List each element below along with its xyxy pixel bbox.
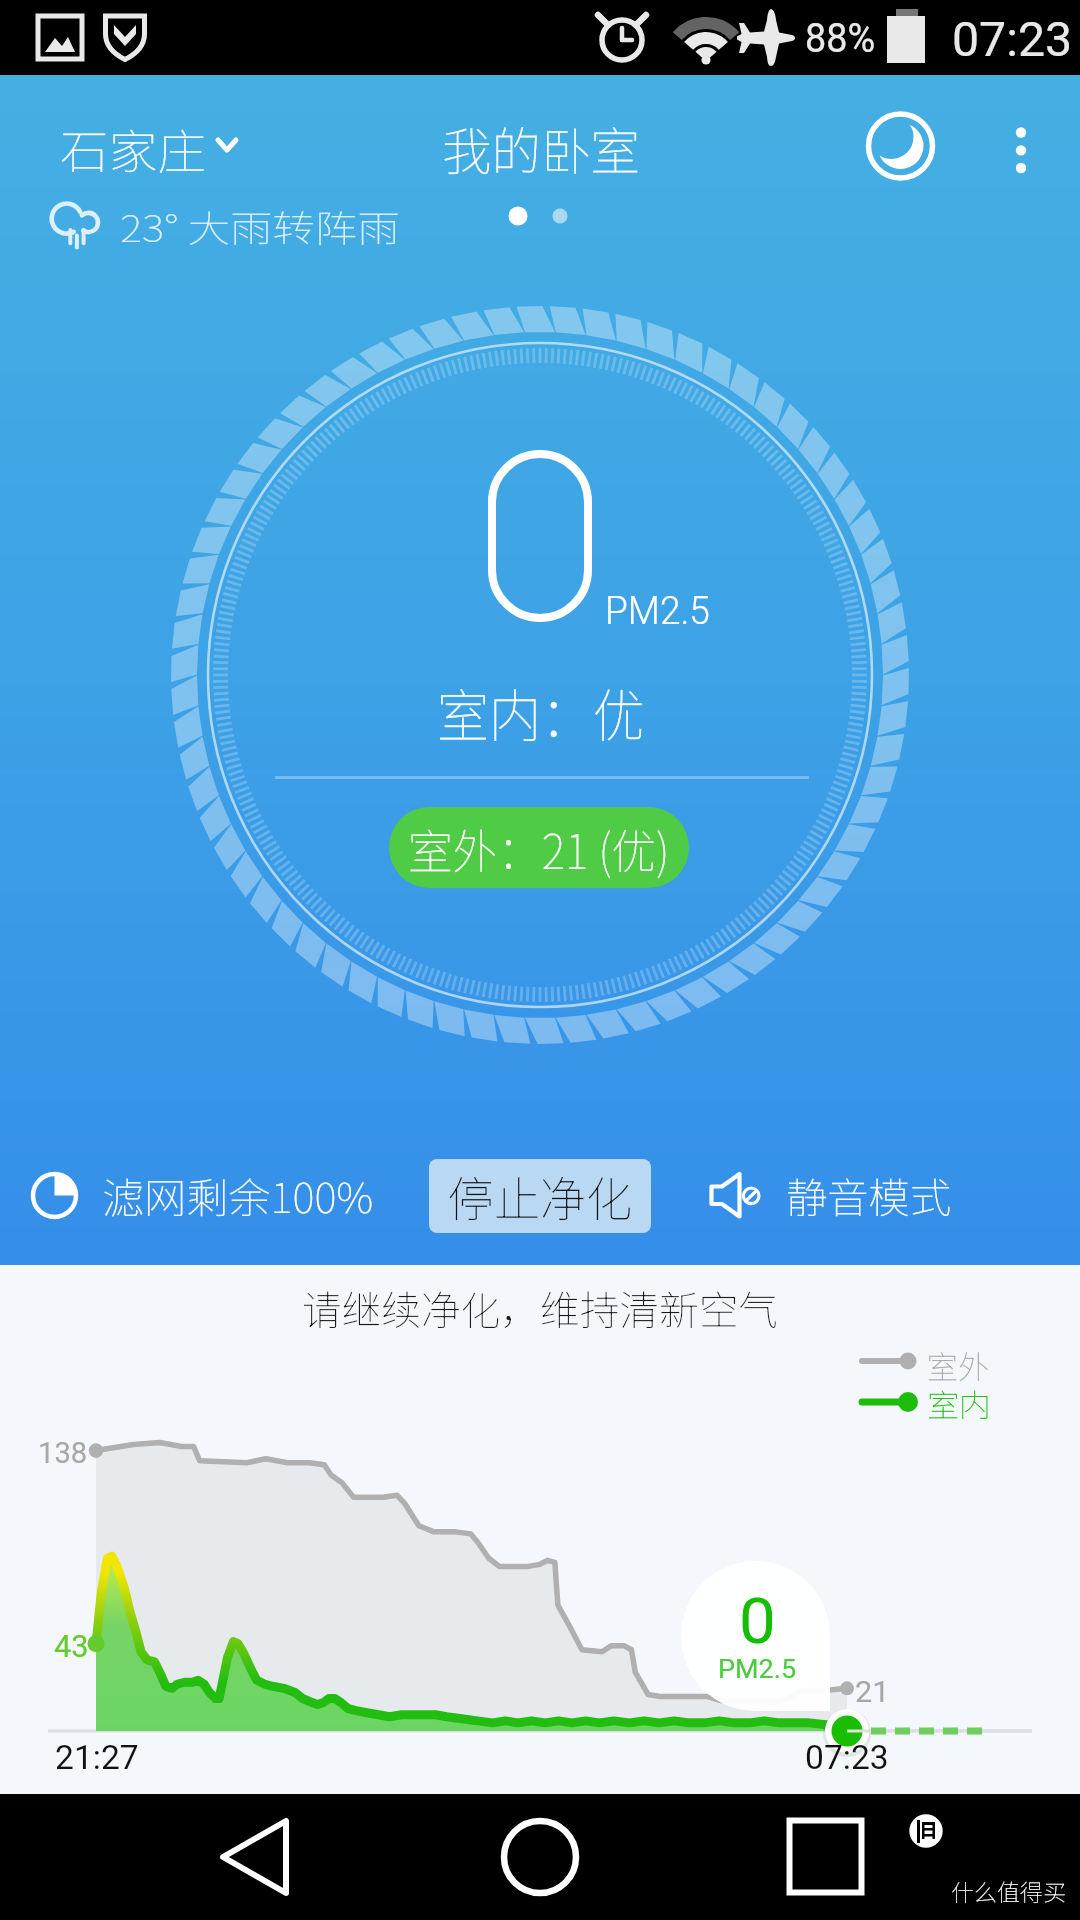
staticText: 什么值得买 bbox=[951, 1874, 1066, 1907]
staticText: 0 bbox=[739, 1584, 776, 1658]
staticText: 21:27 bbox=[55, 1738, 139, 1778]
button[interactable]: Home bbox=[420, 1794, 660, 1920]
button[interactable]: 室外：21 (优) bbox=[389, 807, 689, 888]
button[interactable] bbox=[50, 115, 250, 189]
staticText: 室外 bbox=[927, 1342, 989, 1388]
button[interactable] bbox=[44, 199, 404, 255]
staticText: 室外：21 (优) bbox=[408, 814, 670, 882]
staticText: 停止净化 bbox=[448, 1161, 633, 1231]
button[interactable]: Night mode bbox=[855, 103, 945, 193]
staticText: 07:23 bbox=[952, 12, 1072, 67]
staticText: 138 bbox=[38, 1435, 88, 1470]
staticText: PM2.5 bbox=[718, 1655, 797, 1684]
staticText: 室内：优 bbox=[437, 671, 645, 754]
staticText: 88% bbox=[805, 14, 876, 61]
staticText: 请继续净化，维持清新空气 bbox=[302, 1278, 779, 1336]
button[interactable]: Recent apps bbox=[705, 1794, 945, 1920]
staticText: 静音模式 bbox=[786, 1165, 952, 1225]
staticText: 室内 bbox=[927, 1380, 991, 1426]
staticText: 我的卧室 bbox=[442, 111, 641, 185]
button[interactable]: Back bbox=[135, 1794, 375, 1920]
staticText: 23° 大雨转阵雨 bbox=[120, 199, 400, 253]
staticText: 21 bbox=[855, 1674, 890, 1709]
staticText: 滤网剩余100% bbox=[102, 1165, 374, 1225]
staticText: 07:23 bbox=[805, 1738, 889, 1778]
button[interactable] bbox=[700, 1160, 970, 1232]
staticText: PM2.5 bbox=[605, 588, 710, 633]
staticText: 石家庄 bbox=[60, 114, 206, 182]
button[interactable]: 停止净化 bbox=[429, 1159, 651, 1233]
button[interactable] bbox=[24, 1160, 384, 1232]
button[interactable]: More options bbox=[981, 105, 1061, 185]
staticText: 43 bbox=[54, 1628, 89, 1664]
